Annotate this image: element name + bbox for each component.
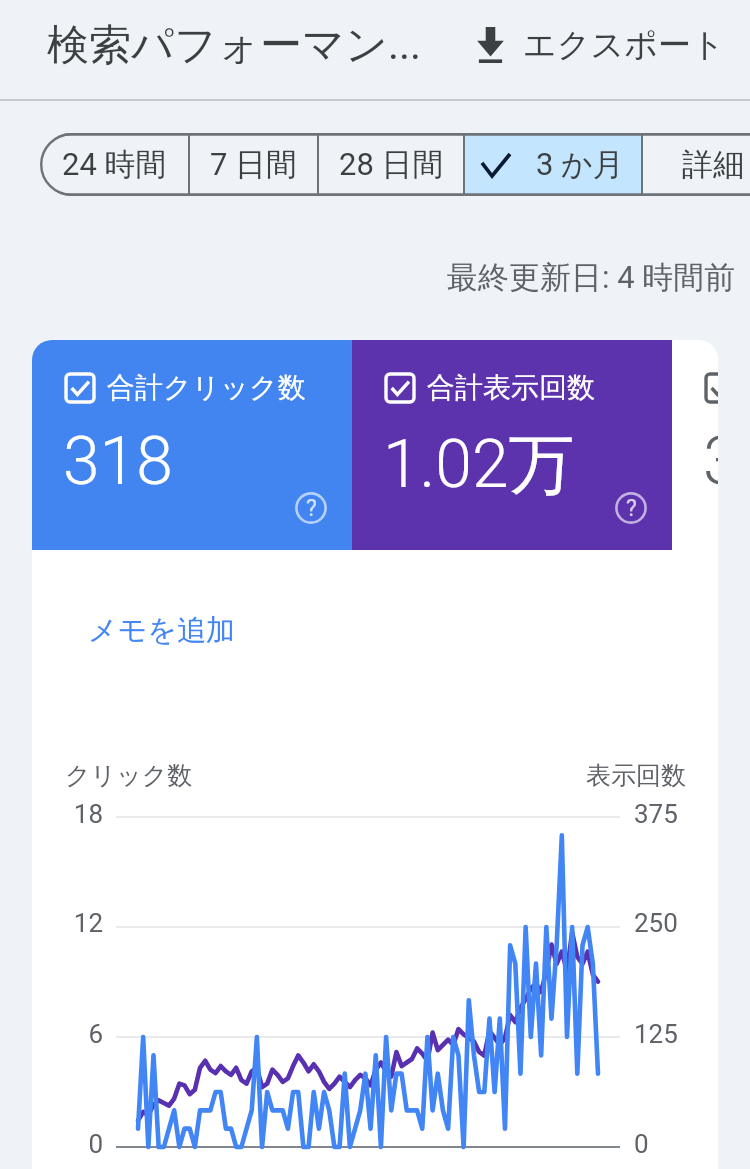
staticText: ?: [626, 495, 637, 522]
button[interactable]: 28 日間: [319, 133, 463, 196]
staticText: エクスポート: [523, 24, 725, 66]
staticText: 3.1%: [703, 423, 718, 500]
button[interactable]: 24 時間: [40, 133, 188, 196]
staticText: 0: [52, 1129, 103, 1159]
staticText: 24 時間: [62, 145, 167, 184]
staticText: 318: [63, 423, 173, 500]
staticText: 検索パフォーマン...: [47, 19, 422, 72]
staticText: 12: [52, 908, 103, 938]
staticText: 表示回数: [586, 760, 686, 791]
staticText: 0: [634, 1129, 696, 1159]
other: Export: [476, 27, 505, 63]
button[interactable]: メモを追加: [88, 612, 236, 649]
staticText: 6: [52, 1019, 103, 1049]
staticText: 18: [52, 799, 103, 829]
staticText: 合計表示回数: [427, 370, 595, 405]
button[interactable]: 詳細: [643, 133, 750, 196]
staticText: 1.02万: [383, 423, 575, 506]
button[interactable]: 合計表示回数: [352, 340, 672, 550]
staticText: 合計クリック数: [107, 370, 306, 405]
staticText: 28 日間: [339, 145, 444, 184]
staticText: クリック数: [65, 760, 193, 791]
staticText: 詳細: [682, 145, 744, 184]
staticText: ?: [306, 495, 317, 522]
staticText: 375: [634, 799, 696, 829]
staticText: 最終更新日: 4 時間前: [447, 258, 736, 297]
staticText: メモを追加: [88, 612, 236, 649]
button[interactable]: Help: [295, 492, 327, 524]
button[interactable]: 平均CTR: [672, 340, 718, 550]
button[interactable]: 3 か月: [465, 133, 641, 196]
staticText: 250: [634, 908, 696, 938]
button[interactable]: 合計クリック数: [32, 340, 352, 550]
staticText: 3 か月: [536, 145, 624, 184]
button[interactable]: Help: [615, 492, 647, 524]
button[interactable]: 7 日間: [190, 133, 317, 196]
staticText: 7 日間: [210, 145, 298, 184]
staticText: 125: [634, 1019, 696, 1049]
button[interactable]: Export: [466, 4, 735, 86]
